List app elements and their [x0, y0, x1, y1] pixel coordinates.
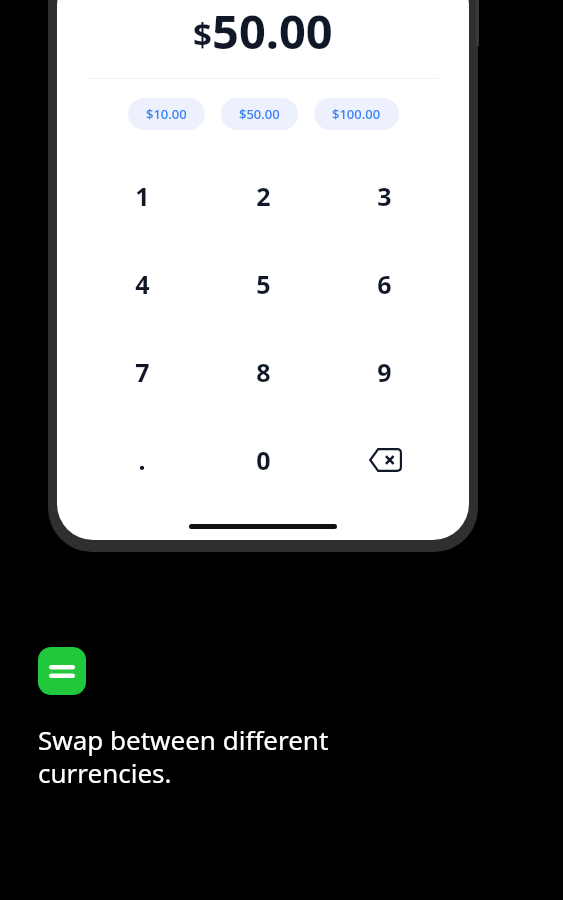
button[interactable]: $100.00: [314, 98, 399, 130]
staticText: 1: [135, 179, 150, 213]
staticText: 7: [135, 355, 150, 389]
staticText: 8: [256, 355, 271, 389]
staticText: 6: [377, 267, 392, 301]
button[interactable]: 3: [324, 152, 445, 240]
staticText: 0: [256, 443, 271, 477]
staticText: 5: [256, 267, 271, 301]
button[interactable]: 2: [203, 152, 324, 240]
staticText: $: [193, 12, 212, 57]
staticText: 2: [256, 179, 271, 213]
button[interactable]: 4: [81, 240, 203, 328]
button[interactable]: 1: [81, 152, 203, 240]
staticText: $100.00: [332, 105, 381, 123]
button[interactable]: 0: [203, 416, 324, 504]
staticText: $10.00: [146, 105, 187, 123]
button[interactable]: $10.00: [128, 98, 205, 130]
button[interactable]: 7: [81, 328, 203, 416]
staticText: $50.00: [239, 105, 280, 123]
button[interactable]: $50.00: [221, 98, 298, 130]
button[interactable]: 5: [203, 240, 324, 328]
staticText: 4: [135, 267, 150, 301]
button[interactable]: 8: [203, 328, 324, 416]
staticText: 50.00: [212, 0, 333, 63]
button[interactable]: 6: [324, 240, 445, 328]
staticText: 9: [377, 355, 392, 389]
staticText: .: [138, 443, 146, 477]
staticText: Swap between different currencies.: [38, 722, 329, 791]
button[interactable]: 9: [324, 328, 445, 416]
staticText: 3: [377, 179, 392, 213]
button[interactable]: Backspace: [324, 416, 445, 504]
button[interactable]: .: [81, 416, 203, 504]
button[interactable]: Swap currencies: [38, 647, 86, 695]
